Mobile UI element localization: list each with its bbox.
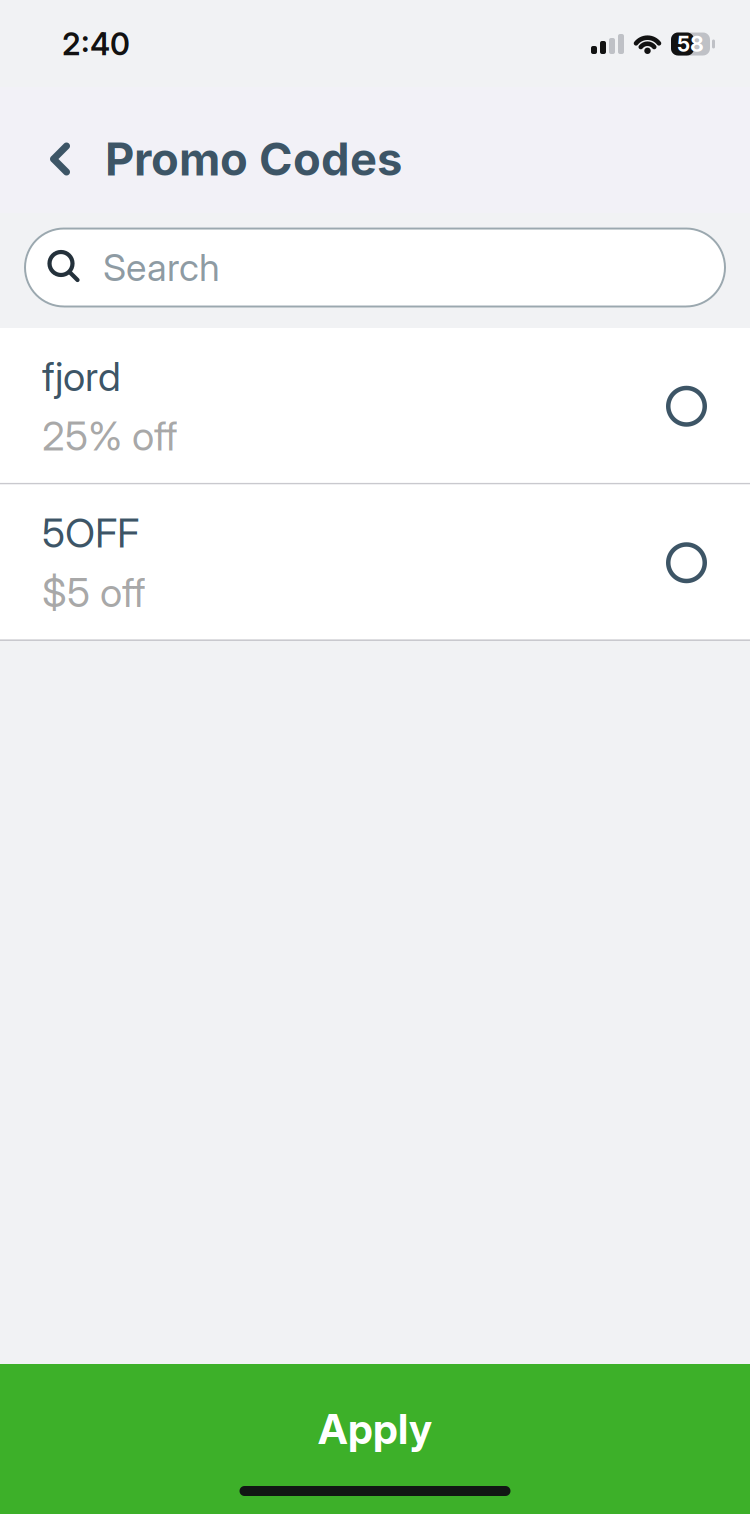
button[interactable]: Search	[24, 227, 726, 307]
staticText: fjord	[42, 352, 121, 401]
staticText: $5 off	[42, 568, 146, 617]
button[interactable]: 5OFF	[0, 484, 750, 641]
staticText: Promo Codes	[105, 132, 402, 186]
staticText: 2:40	[62, 25, 130, 62]
staticText: 58	[677, 31, 704, 57]
button[interactable]: fjord	[0, 328, 750, 484]
button[interactable]: Apply	[0, 1364, 750, 1514]
staticText: 5OFF	[42, 509, 139, 557]
staticText: Apply	[318, 1404, 432, 1454]
button[interactable]: Back	[0, 128, 98, 190]
staticText: 25% off	[42, 412, 178, 460]
staticText: Search	[103, 245, 220, 290]
